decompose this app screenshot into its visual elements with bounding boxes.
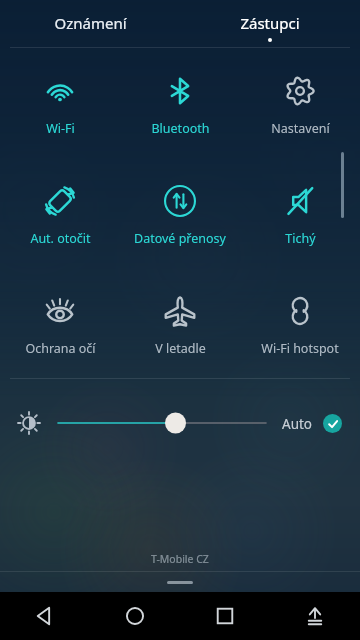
- button[interactable]: Tichý: [240, 158, 360, 268]
- button[interactable]: Nastavení: [240, 48, 360, 158]
- button[interactable]: Zástupci: [180, 0, 360, 47]
- button[interactable]: V letadle: [120, 268, 240, 378]
- staticText: Zástupci: [240, 13, 300, 33]
- staticText: Nastavení: [271, 120, 330, 137]
- button[interactable]: Datové přenosy: [120, 158, 240, 268]
- staticText: Auto: [282, 415, 313, 433]
- button[interactable]: Home: [90, 592, 180, 640]
- button[interactable]: Recents: [180, 592, 270, 640]
- staticText: Aut. otočit: [30, 230, 91, 247]
- staticText: Oznámení: [54, 13, 127, 33]
- button[interactable]: Wi-Fi: [0, 48, 120, 158]
- button[interactable]: Wi-Fi hotspot: [240, 268, 360, 378]
- button[interactable]: [58, 410, 266, 436]
- button[interactable]: Bluetooth: [120, 48, 240, 158]
- staticText: T-Mobile CZ: [151, 552, 209, 566]
- other: Brightness: [18, 412, 40, 434]
- staticText: Ochrana očí: [25, 340, 96, 357]
- button[interactable]: Auto: [282, 414, 342, 433]
- button[interactable]: Oznámení: [0, 0, 180, 47]
- staticText: Datové přenosy: [134, 230, 226, 247]
- staticText: V letadle: [155, 340, 206, 357]
- button[interactable]: Ochrana očí: [0, 268, 120, 378]
- button[interactable]: [167, 581, 193, 584]
- staticText: Bluetooth: [151, 120, 210, 137]
- button[interactable]: Aut. otočit: [0, 158, 120, 268]
- staticText: Tichý: [285, 230, 316, 247]
- staticText: Wi-Fi hotspot: [261, 340, 339, 357]
- button[interactable]: Back: [0, 592, 90, 640]
- staticText: Wi-Fi: [46, 120, 75, 137]
- button[interactable]: Hide navigation bar: [270, 592, 360, 640]
